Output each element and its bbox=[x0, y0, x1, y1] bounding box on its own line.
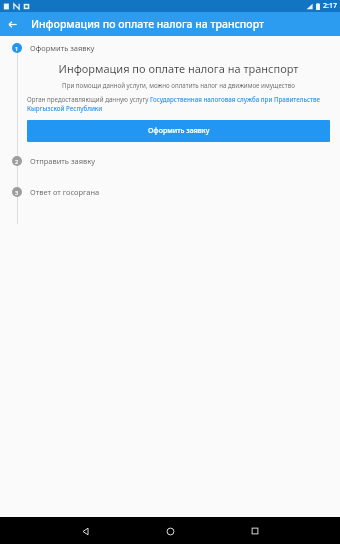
staticText: Информация по оплате налога на транспорт bbox=[27, 61, 330, 76]
button[interactable]: Back bbox=[0, 12, 24, 36]
button[interactable]: 3 bbox=[0, 187, 340, 197]
button[interactable]: 1 bbox=[0, 43, 340, 53]
button[interactable]: Оформить заявку bbox=[27, 120, 330, 142]
button[interactable]: 2 bbox=[0, 156, 340, 166]
staticText: 2 bbox=[15, 158, 19, 165]
staticText: 3 bbox=[15, 189, 19, 196]
staticText: 2:17 bbox=[323, 1, 337, 11]
staticText: Ответ от госоргана bbox=[30, 187, 100, 197]
button[interactable]: Home bbox=[159, 520, 181, 542]
staticText: Орган предоставляющий данную услугу Госу… bbox=[27, 95, 330, 113]
staticText: Отправить заявку bbox=[30, 156, 96, 166]
button[interactable]: Recent apps bbox=[244, 520, 266, 542]
staticText: Оформить заявку bbox=[30, 43, 95, 53]
staticText: При помощи данной услуги, можно оплатить… bbox=[27, 81, 330, 89]
staticText: 1 bbox=[15, 45, 19, 52]
staticText: Оформить заявку bbox=[148, 126, 210, 136]
staticText: Информация по оплате налога на транспорт bbox=[31, 17, 265, 31]
button[interactable]: Back bbox=[74, 520, 96, 542]
